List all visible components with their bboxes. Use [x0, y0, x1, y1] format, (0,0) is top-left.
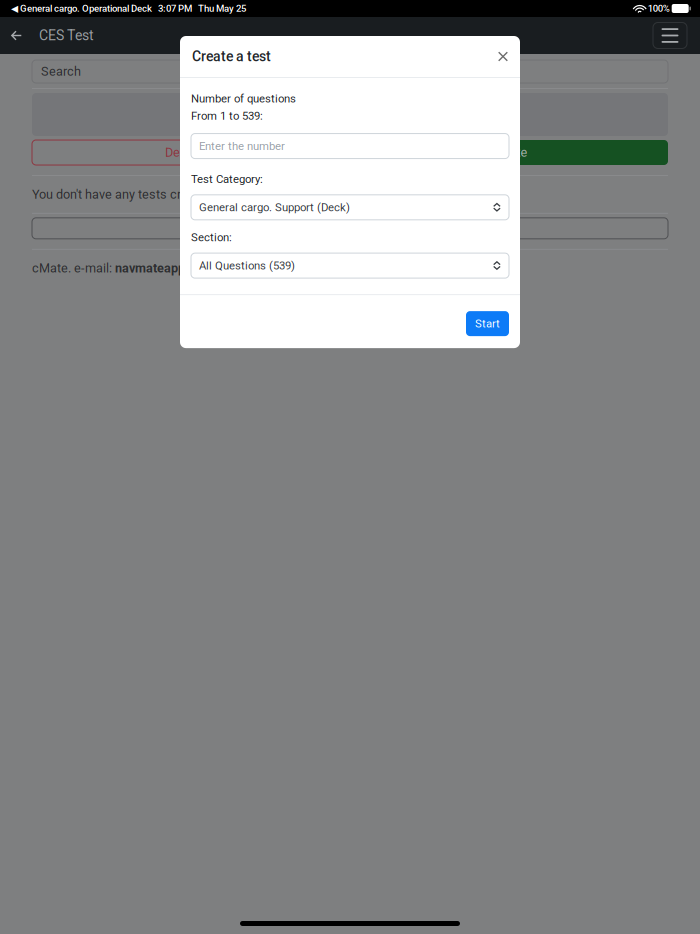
staticText: Enter the number [199, 139, 285, 153]
button[interactable]: Start [466, 311, 509, 336]
staticText: From 1 to 539: [191, 109, 263, 123]
staticText: Number of questions [191, 92, 296, 105]
staticText: CES Test [39, 27, 94, 44]
button[interactable]: Back [3, 17, 39, 54]
button[interactable]: All Questions (539) [191, 253, 509, 278]
staticText: Create a test [192, 48, 271, 65]
staticText: General cargo. Operational Deck [18, 3, 152, 14]
button[interactable]: Delete all [32, 140, 350, 165]
staticText: You don't have any tests created yet [32, 187, 233, 202]
staticText: Start [475, 317, 500, 330]
staticText: All Questions (539) [199, 259, 295, 272]
button[interactable]: Create [350, 140, 668, 165]
button[interactable]: General cargo. Support (Deck) [191, 195, 509, 220]
staticText: 3:07 PM [152, 3, 192, 14]
staticText: ◀ [11, 3, 18, 14]
staticText: Delete all [165, 145, 217, 160]
staticText: navmateapp@gmail.com [115, 261, 256, 276]
staticText: Test Category: [191, 173, 263, 186]
staticText: 100% [646, 3, 672, 14]
staticText: Search [41, 64, 81, 79]
staticText: Create [490, 145, 527, 160]
staticText: Thu May 25 [192, 3, 246, 14]
button[interactable]: Menu [653, 22, 687, 48]
staticText: Section: [191, 231, 232, 244]
staticText: cMate. e-mail: [32, 261, 115, 276]
button[interactable]: Close [492, 45, 514, 67]
staticText: General cargo. Support (Deck) [199, 201, 350, 214]
